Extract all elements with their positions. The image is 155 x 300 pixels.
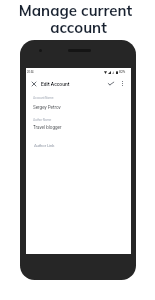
staticText: Travel blogger	[33, 125, 62, 130]
staticText: Edit Account	[41, 81, 70, 87]
staticText: Sergey Petrov	[33, 105, 61, 110]
button[interactable]: Close	[27, 77, 40, 91]
button[interactable]: Edit Account	[41, 77, 70, 91]
staticText: account	[1, 18, 155, 37]
staticText: Author Name	[33, 118, 52, 122]
staticText: Account Name	[33, 96, 54, 100]
staticText: 20:34	[27, 71, 34, 74]
staticText: Author Link	[34, 143, 55, 148]
staticText: Manage current	[0, 1, 153, 20]
staticText: 82%	[119, 70, 126, 74]
button[interactable]: More options	[117, 76, 127, 90]
button[interactable]: Save	[105, 76, 117, 90]
